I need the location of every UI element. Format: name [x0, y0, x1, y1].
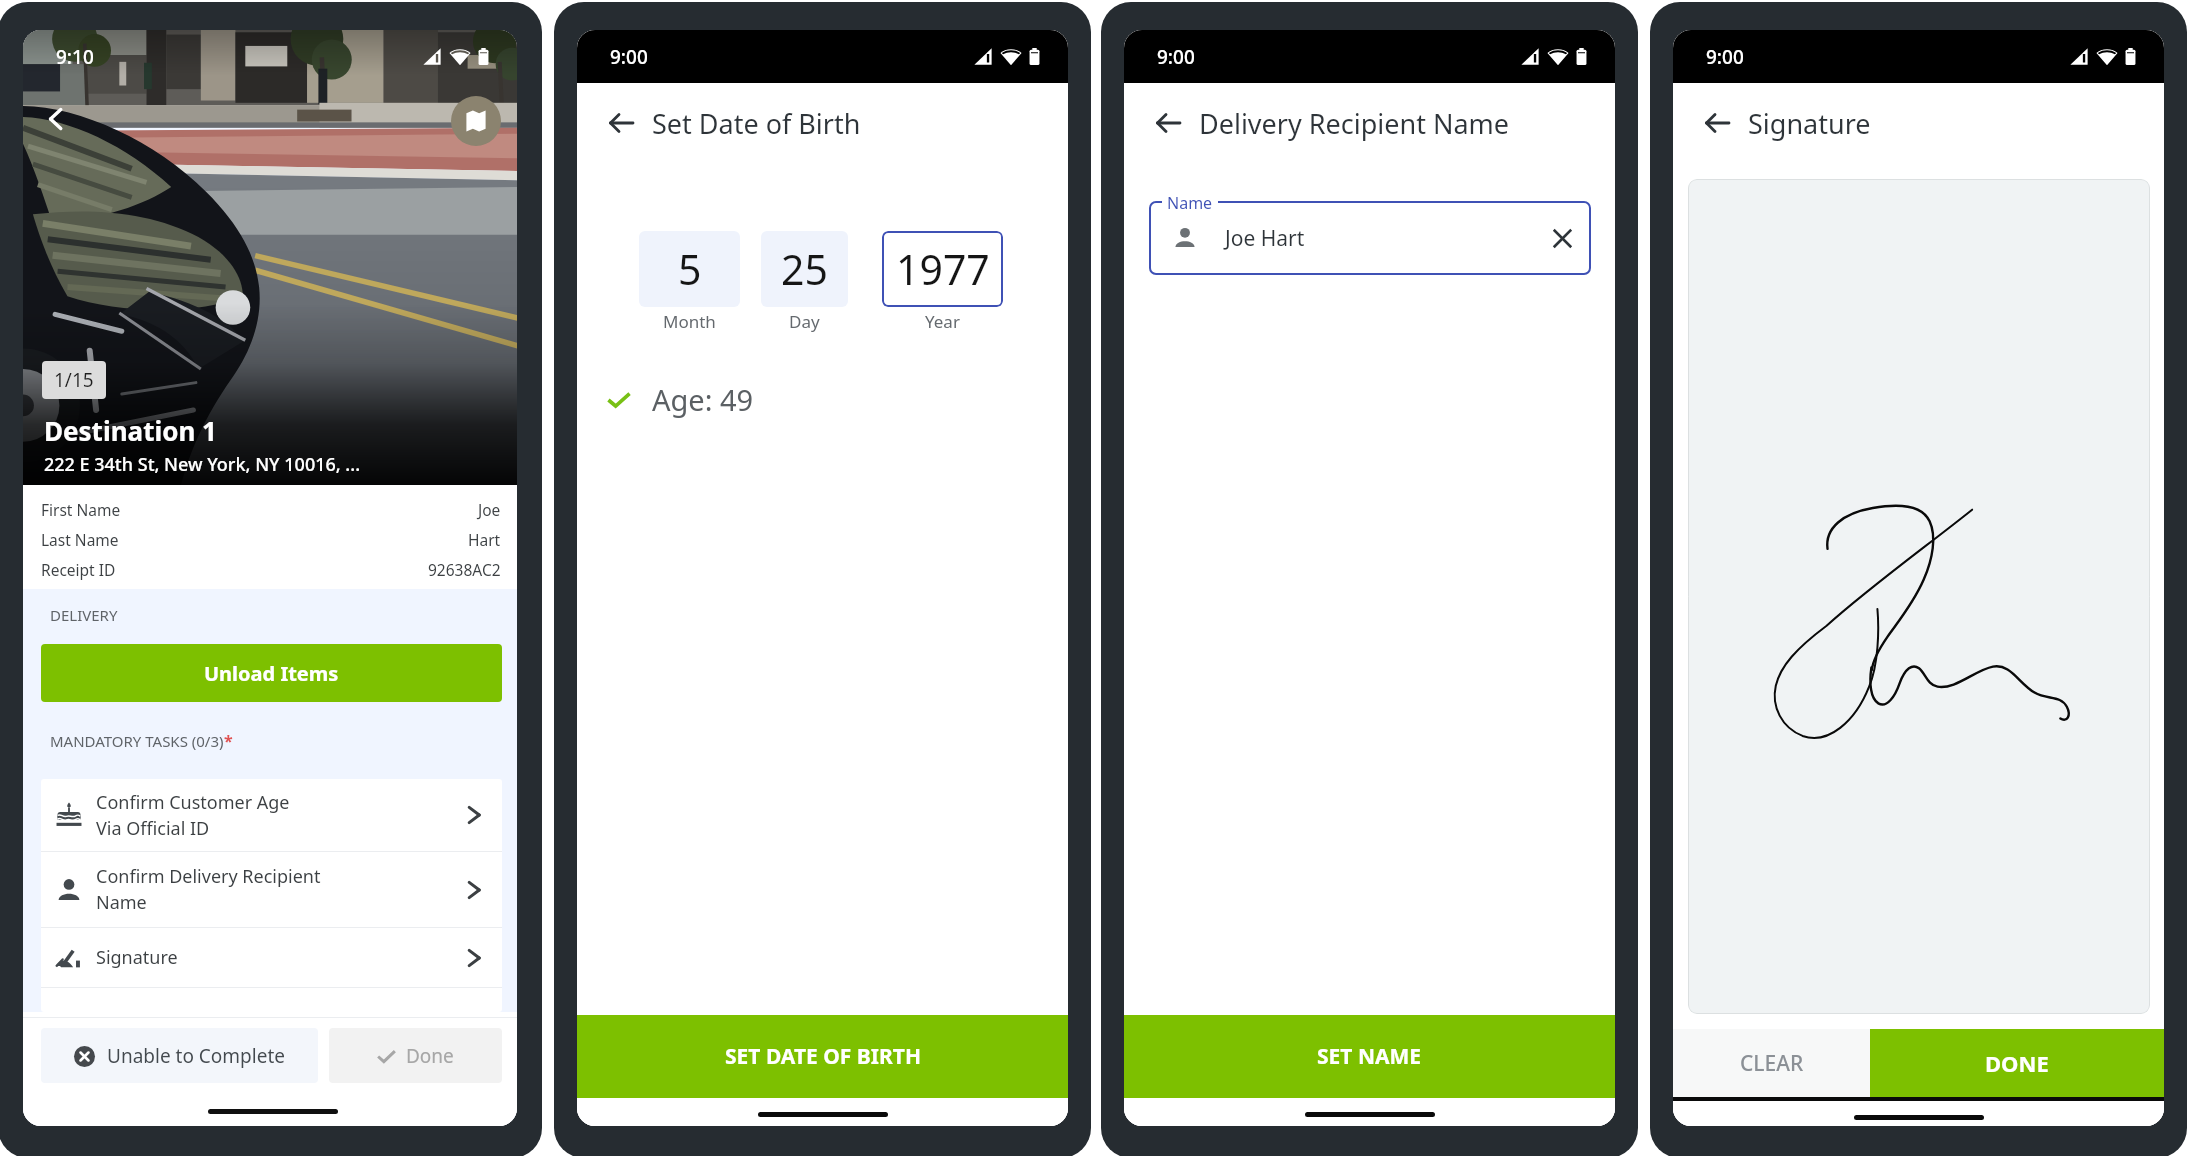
staticText: Done [406, 1043, 454, 1069]
staticText: CLEAR [1740, 1049, 1804, 1078]
button[interactable]: Back [1705, 112, 1730, 134]
staticText: Last Name [41, 529, 119, 550]
staticText: Signature [96, 945, 462, 970]
staticText: Unable to Complete [107, 1043, 285, 1069]
staticText: MANDATORY TASKS (0/3) [50, 731, 224, 751]
staticText: Age: 49 [652, 380, 754, 419]
staticText: Set Date of Birth [652, 105, 861, 142]
staticText: Signature [1748, 105, 1871, 142]
staticText: Receipt ID [41, 559, 116, 580]
button[interactable]: Map [451, 96, 501, 146]
staticText: 222 E 34th St, New York, NY 10016, ... [44, 452, 361, 477]
button[interactable]: Unable to Complete [41, 1028, 318, 1083]
staticText: 9:00 [610, 44, 648, 70]
button[interactable]: SET NAME [1124, 1015, 1615, 1098]
button[interactable]: SET DATE OF BIRTH [577, 1015, 1068, 1098]
button[interactable]: Back [609, 112, 634, 134]
button[interactable]: 5 [639, 231, 740, 307]
button[interactable]: CLEAR [1673, 1029, 1870, 1097]
staticText: DELIVERY [50, 605, 118, 625]
button[interactable]: Unload Items [41, 644, 502, 702]
staticText: 5 [678, 241, 702, 297]
staticText: Confirm Delivery Recipient Name [96, 864, 462, 915]
staticText: Confirm Customer Age Via Official ID [96, 790, 462, 841]
staticText: 1/15 [54, 367, 94, 393]
staticText: Joe [478, 499, 501, 520]
staticText: SET DATE OF BIRTH [725, 1042, 921, 1071]
button[interactable]: 25 [761, 231, 848, 307]
staticText: 25 [781, 241, 828, 297]
staticText: Year [925, 310, 960, 333]
staticText: * [224, 730, 233, 752]
staticText: 9:00 [1706, 44, 1744, 70]
staticText: 9:10 [56, 44, 94, 70]
button[interactable]: Back [39, 102, 73, 136]
button[interactable]: Signature [41, 928, 502, 987]
button[interactable]: Confirm Customer Age Via Official ID [41, 779, 502, 851]
staticText: 9:00 [1157, 44, 1195, 70]
staticText: Day [789, 310, 820, 333]
staticText: 92638AC2 [428, 559, 501, 580]
staticText: Name [1167, 192, 1213, 214]
button[interactable]: Done [329, 1028, 502, 1083]
staticText: DONE [1985, 1048, 2049, 1078]
button[interactable]: Back [1156, 112, 1181, 134]
staticText: Month [663, 310, 716, 333]
staticText: Hart [468, 529, 501, 550]
button[interactable]: DONE [1870, 1029, 2164, 1097]
button[interactable]: 1977 [882, 231, 1003, 307]
staticText: Unload Items [204, 660, 339, 687]
button[interactable]: Confirm Delivery Recipient Name [41, 852, 502, 927]
button[interactable]: Joe Hart [1149, 201, 1591, 275]
button[interactable]: Clear [1551, 227, 1574, 250]
staticText: Destination 1 [44, 413, 217, 448]
staticText: SET NAME [1317, 1042, 1422, 1071]
staticText: First Name [41, 499, 121, 520]
staticText: 1977 [896, 241, 990, 297]
staticText: Delivery Recipient Name [1199, 105, 1510, 142]
staticText: Joe Hart [1225, 224, 1305, 253]
